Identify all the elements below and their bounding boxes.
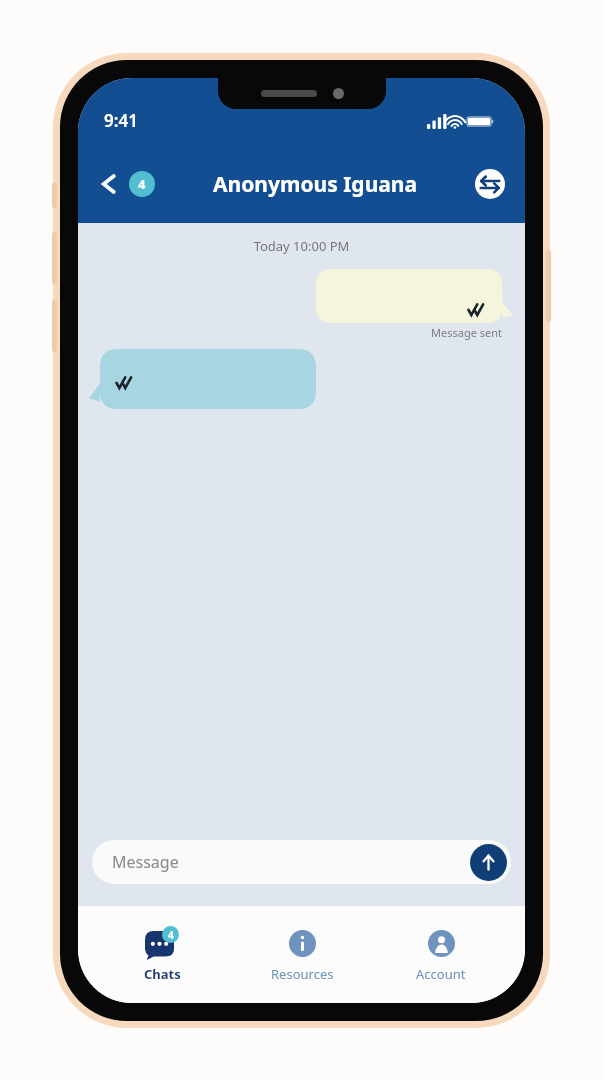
staticText: Chats xyxy=(144,965,181,983)
button[interactable]: Back, 4 unread xyxy=(94,165,159,203)
button[interactable]: Resources xyxy=(247,922,357,987)
button[interactable]: Message xyxy=(92,840,511,884)
staticText: Message sent xyxy=(431,325,502,340)
button[interactable] xyxy=(89,349,316,409)
button[interactable] xyxy=(316,269,513,323)
staticText: Message xyxy=(112,851,179,873)
staticText: Account xyxy=(416,965,466,983)
staticText: Today 10:00 PM xyxy=(78,237,525,255)
staticText: 4 xyxy=(138,175,146,193)
staticText: Anonymous Iguana xyxy=(213,170,418,199)
button[interactable]: Send xyxy=(470,844,507,881)
staticText: 9:41 xyxy=(104,109,138,132)
button[interactable]: Account xyxy=(386,922,496,987)
staticText: Resources xyxy=(271,965,334,983)
button[interactable]: Switch conversation xyxy=(471,165,509,203)
staticText: 4 xyxy=(168,928,174,942)
button[interactable]: 4 xyxy=(107,922,217,987)
